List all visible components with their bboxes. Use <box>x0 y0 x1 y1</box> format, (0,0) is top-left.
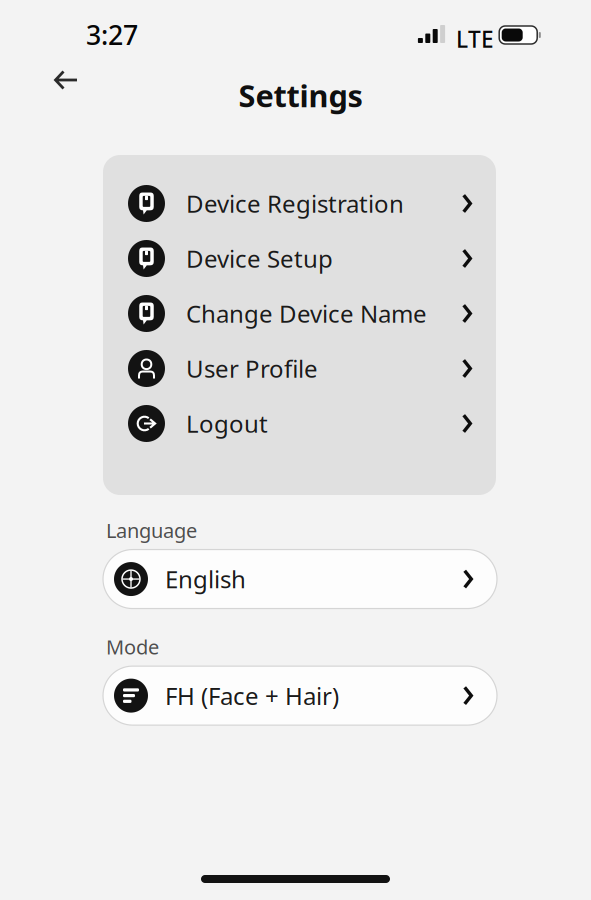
staticText: Logout <box>186 408 268 439</box>
staticText: Mode <box>106 634 159 660</box>
staticText: Language <box>106 517 197 544</box>
button[interactable]: Device Setup <box>103 231 496 286</box>
staticText: Device Registration <box>186 188 404 219</box>
button[interactable]: Logout <box>103 396 496 451</box>
button[interactable]: Change Device Name <box>103 286 496 341</box>
staticText: User Profile <box>186 353 318 384</box>
button[interactable]: FH (Face + Hair) <box>103 666 497 725</box>
staticText: Device Setup <box>186 243 333 274</box>
staticText: English <box>165 563 246 595</box>
button[interactable]: Device Registration <box>103 176 496 231</box>
staticText: LTE <box>456 24 494 54</box>
button[interactable]: User Profile <box>103 341 496 396</box>
staticText: Settings <box>238 75 362 116</box>
staticText: Change Device Name <box>186 298 427 329</box>
staticText: 3:27 <box>86 17 138 52</box>
button[interactable]: English <box>103 550 497 609</box>
staticText: FH (Face + Hair) <box>165 680 339 712</box>
button[interactable]: Back <box>44 60 88 100</box>
